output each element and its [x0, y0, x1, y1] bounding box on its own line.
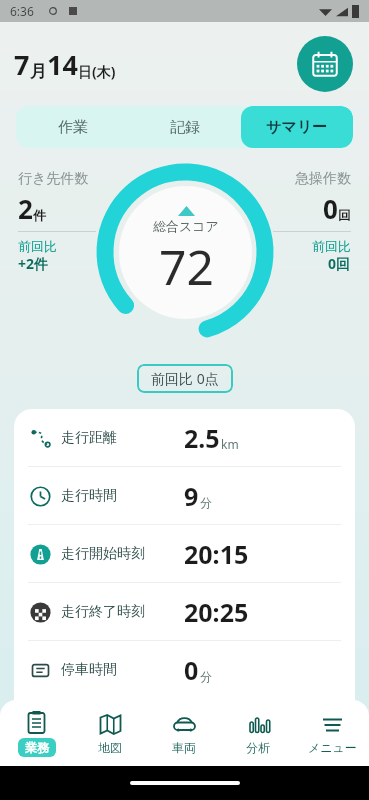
staticText: 前回比 0点	[151, 369, 219, 388]
staticText: 記録	[170, 118, 200, 137]
staticText: 停車時間	[61, 661, 117, 679]
staticText: 前回比	[312, 238, 351, 254]
staticText: 走行時間	[61, 487, 117, 505]
button[interactable]: 走行距離	[14, 409, 355, 466]
staticText: km	[221, 436, 239, 452]
staticText: 業務	[25, 740, 49, 755]
staticText: 2	[18, 191, 33, 226]
button[interactable]: 走行終了時刻	[14, 583, 355, 640]
staticText: 分	[200, 669, 212, 684]
staticText: 走行終了時刻	[61, 603, 145, 621]
staticText: 7	[14, 46, 30, 83]
staticText: サマリー	[266, 118, 328, 137]
button[interactable]: 記録	[129, 106, 241, 148]
button[interactable]: 業務	[0, 700, 73, 766]
staticText: 0	[323, 191, 338, 226]
staticText: 分	[200, 495, 212, 510]
staticText: 分析	[246, 740, 270, 755]
staticText: 行き先件数	[18, 170, 89, 188]
button[interactable]: 分析	[221, 700, 295, 766]
staticText: 走行開始時刻	[61, 545, 145, 563]
button[interactable]: サマリー	[241, 106, 353, 148]
staticText: 件	[33, 207, 46, 223]
staticText: 2.5	[184, 421, 220, 455]
staticText: 0	[184, 653, 199, 687]
button[interactable]: 車両	[147, 700, 221, 766]
staticText: 作業	[58, 118, 88, 137]
button[interactable]: 地図	[73, 700, 147, 766]
staticText: 9	[184, 479, 199, 513]
staticText: +2件	[18, 254, 49, 273]
staticText: 前回比	[18, 238, 57, 254]
staticText: 14	[47, 46, 78, 83]
staticText: 総合スコア	[153, 218, 219, 234]
staticText: 日(木)	[78, 62, 116, 81]
staticText: 車両	[172, 740, 196, 755]
button[interactable]: 作業	[16, 106, 129, 148]
staticText: 急操作数	[295, 170, 351, 188]
staticText: 6:36	[10, 3, 34, 19]
button[interactable]: 停車時間	[14, 641, 355, 698]
button[interactable]: 前回比 0点	[151, 369, 219, 388]
staticText: 20:25	[184, 595, 249, 629]
staticText: 地図	[98, 740, 122, 755]
button[interactable]: Calendar	[297, 36, 353, 92]
button[interactable]: メニュー	[295, 700, 369, 766]
staticText: 月	[30, 61, 47, 82]
staticText: 0回	[328, 254, 351, 273]
staticText: 20:15	[184, 537, 249, 571]
button[interactable]: 走行時間	[14, 467, 355, 524]
staticText: 走行距離	[61, 429, 117, 447]
button[interactable]: 走行開始時刻	[14, 525, 355, 582]
staticText: メニュー	[308, 740, 357, 755]
staticText: 回	[338, 207, 351, 223]
staticText: 72	[159, 234, 214, 299]
